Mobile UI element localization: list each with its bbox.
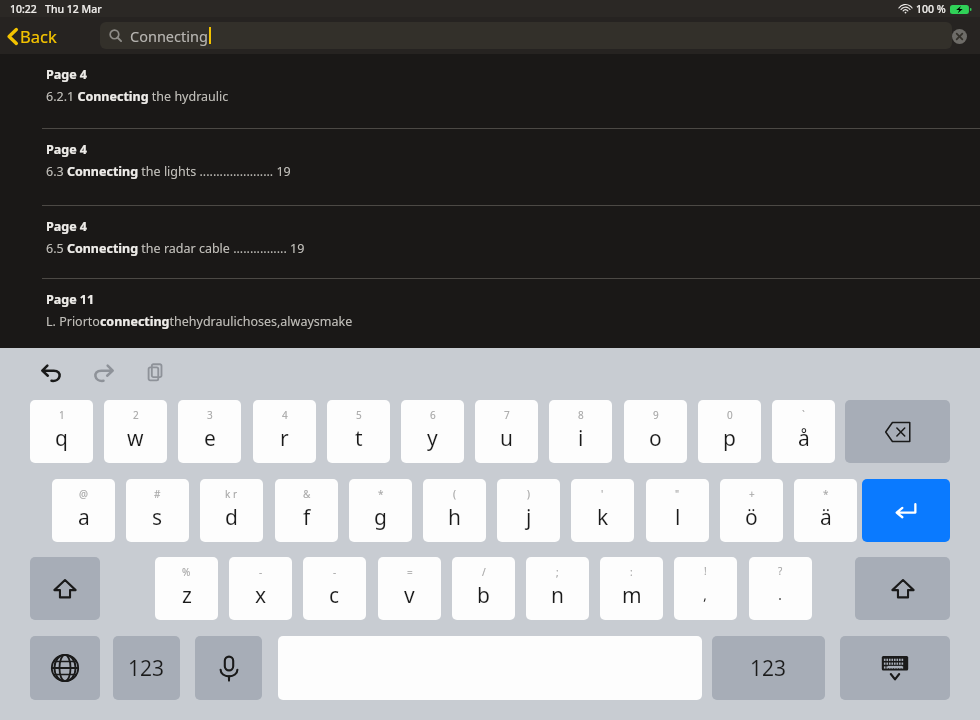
button[interactable]: k r — [200, 479, 263, 542]
button[interactable]: 0 — [698, 400, 761, 463]
button[interactable]: ? — [749, 557, 812, 620]
staticText: * — [823, 487, 829, 501]
button[interactable]: + — [720, 479, 783, 542]
button[interactable]: # — [126, 479, 189, 542]
button[interactable]: Page 4 — [0, 206, 980, 279]
staticText: s — [152, 503, 163, 532]
staticText: t — [355, 424, 363, 453]
button[interactable]: 6 — [401, 400, 464, 463]
button[interactable]: Shift — [855, 557, 950, 620]
staticText: @ — [79, 487, 88, 501]
button[interactable]: 123 — [712, 636, 825, 700]
staticText: k — [597, 503, 609, 532]
staticText: k r — [225, 487, 238, 501]
button[interactable]: " — [646, 479, 709, 542]
button[interactable]: Hide keyboard — [840, 636, 950, 700]
button[interactable]: ' — [571, 479, 634, 542]
button[interactable]: Dictate — [195, 636, 262, 700]
staticText: 3 — [207, 408, 213, 422]
staticText: - — [333, 565, 337, 579]
button[interactable]: 2 — [104, 400, 167, 463]
button[interactable]: 7 — [475, 400, 538, 463]
button[interactable]: / — [452, 557, 515, 620]
staticText: - — [259, 565, 263, 579]
staticText: ( — [453, 487, 456, 501]
button[interactable]: - — [229, 557, 292, 620]
staticText: 6.5 Connecting the radar cable .........… — [46, 240, 305, 257]
button[interactable]: & — [275, 479, 338, 542]
button[interactable]: 1 — [30, 400, 93, 463]
button[interactable]: @ — [52, 479, 115, 542]
button[interactable]: Paste — [138, 355, 172, 389]
button[interactable]: = — [378, 557, 441, 620]
button[interactable]: Return — [862, 479, 950, 542]
staticText: & — [303, 487, 311, 501]
button[interactable]: 8 — [549, 400, 612, 463]
staticText: ö — [745, 503, 758, 532]
button[interactable]: ) — [497, 479, 560, 542]
button[interactable]: Shift — [30, 557, 100, 620]
staticText: Page 11 — [46, 291, 95, 308]
button[interactable]: 4 — [253, 400, 316, 463]
staticText: p — [723, 424, 736, 453]
staticText: f — [303, 503, 311, 532]
staticText: c — [329, 581, 340, 610]
button[interactable]: Page 4 — [0, 54, 980, 129]
staticText: 9 — [653, 408, 659, 422]
staticText: 123 — [750, 654, 787, 683]
staticText: Page 4 — [46, 66, 88, 83]
staticText: n — [551, 581, 564, 610]
button[interactable]: Undo — [34, 355, 68, 389]
button[interactable]: 3 — [178, 400, 241, 463]
staticText: r — [280, 424, 289, 453]
staticText: j — [526, 503, 532, 532]
button[interactable]: Page 4 — [0, 129, 980, 206]
staticText: 7 — [504, 408, 510, 422]
button[interactable]: : — [600, 557, 663, 620]
staticText: u — [500, 424, 513, 453]
staticText: v — [404, 581, 415, 610]
staticText: ) — [527, 487, 530, 501]
staticText: q — [55, 424, 68, 453]
button[interactable]: ! — [674, 557, 737, 620]
staticText: / — [482, 565, 486, 579]
button[interactable]: Redo — [86, 355, 120, 389]
staticText: 8 — [578, 408, 584, 422]
button[interactable]: Page 11 — [0, 279, 980, 348]
staticText: # — [154, 487, 161, 501]
staticText: 0 — [727, 408, 733, 422]
button[interactable]: 5 — [327, 400, 390, 463]
staticText: = — [407, 565, 413, 579]
button[interactable]: 9 — [624, 400, 687, 463]
staticText: m — [622, 581, 642, 610]
button[interactable]: ( — [423, 479, 486, 542]
button[interactable]: Backspace — [845, 400, 950, 463]
staticText: : — [630, 565, 633, 579]
staticText: " — [675, 487, 680, 501]
button[interactable]: Connecting — [100, 22, 952, 49]
staticText: , — [703, 584, 708, 604]
staticText: ; — [556, 565, 559, 579]
staticText: i — [578, 424, 584, 453]
staticText: ' — [601, 487, 604, 501]
button[interactable]: ; — [526, 557, 589, 620]
button[interactable]: Switch keyboard — [30, 636, 100, 700]
staticText: å — [798, 424, 810, 453]
button[interactable]: * — [794, 479, 857, 542]
button[interactable]: Clear search — [948, 25, 970, 47]
button[interactable]: 123 — [113, 636, 180, 700]
staticText: 6.2.1 Connecting the hydraulic — [46, 88, 229, 105]
staticText: ä — [820, 503, 832, 532]
staticText: Back — [20, 25, 57, 47]
button[interactable]: Back — [6, 25, 57, 47]
staticText: * — [378, 487, 384, 501]
staticText: 6 — [430, 408, 436, 422]
button[interactable]: % — [155, 557, 218, 620]
button[interactable]: - — [303, 557, 366, 620]
staticText: Connecting — [130, 26, 208, 46]
button[interactable]: ` — [772, 400, 835, 463]
button[interactable]: * — [349, 479, 412, 542]
staticText: 5 — [356, 408, 362, 422]
staticText: 6.3 Connecting the lights ..............… — [46, 163, 291, 180]
